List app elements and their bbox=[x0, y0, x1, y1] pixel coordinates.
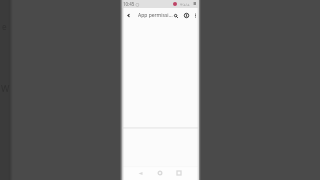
button[interactable]: Back bbox=[135, 168, 145, 178]
button[interactable]: Navigate up bbox=[124, 11, 133, 20]
staticText: 10:45 ○ bbox=[123, 1, 140, 7]
staticText: App permissi… bbox=[138, 12, 173, 19]
staticText: W bbox=[1, 82, 10, 94]
button[interactable]: App permissi… bbox=[136, 8, 171, 20]
staticText: ▾‹▴‹▴ bbox=[180, 1, 190, 7]
button[interactable]: More options bbox=[191, 11, 200, 20]
button[interactable]: Search bbox=[171, 11, 180, 20]
button[interactable]: Home bbox=[155, 168, 165, 178]
button[interactable]: Help and feedback bbox=[182, 11, 191, 20]
button[interactable]: Recent apps bbox=[174, 168, 184, 178]
